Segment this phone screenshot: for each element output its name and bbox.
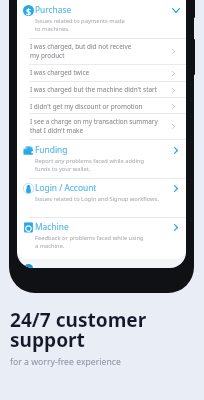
- button[interactable]: $: [17, 0, 186, 39]
- staticText: I was charged, but did not receive my pr…: [30, 42, 132, 60]
- staticText: I was charged twice: [30, 68, 90, 77]
- staticText: 24/7 customer support: [10, 307, 147, 353]
- staticText: I was charged but the machine didn't sta…: [30, 85, 157, 94]
- staticText: Issues related to payments made to machi…: [35, 17, 125, 33]
- staticText: Purchase: [35, 4, 72, 15]
- staticText: I see a charge on my transaction summary…: [30, 117, 158, 135]
- button[interactable]: Machine: [17, 217, 186, 256]
- staticText: Issues related to Login and Signup workf…: [35, 195, 159, 203]
- staticText: $: [26, 5, 32, 16]
- staticText: for a worry-free experience: [10, 356, 121, 368]
- button[interactable]: Funding: [17, 140, 186, 179]
- staticText: Funding: [35, 144, 68, 155]
- button[interactable]: I was charged but the machine didn't sta…: [17, 81, 186, 98]
- button[interactable]: I was charged twice: [17, 64, 186, 81]
- button[interactable]: I was charged, but did not receive my pr…: [17, 38, 186, 64]
- staticText: Feedback or problems faced while using a…: [35, 234, 144, 250]
- button[interactable]: Support chat: [24, 264, 33, 268]
- staticText: Report any problems faced while adding f…: [35, 157, 145, 173]
- staticText: Machine: [35, 221, 69, 232]
- button[interactable]: Login / Account: [17, 178, 186, 217]
- button[interactable]: I see a charge on my transaction summary…: [17, 113, 186, 139]
- button[interactable]: I didn't get my discount or promotion: [17, 98, 186, 114]
- staticText: I didn't get my discount or promotion: [30, 102, 143, 111]
- staticText: Login / Account: [35, 182, 97, 193]
